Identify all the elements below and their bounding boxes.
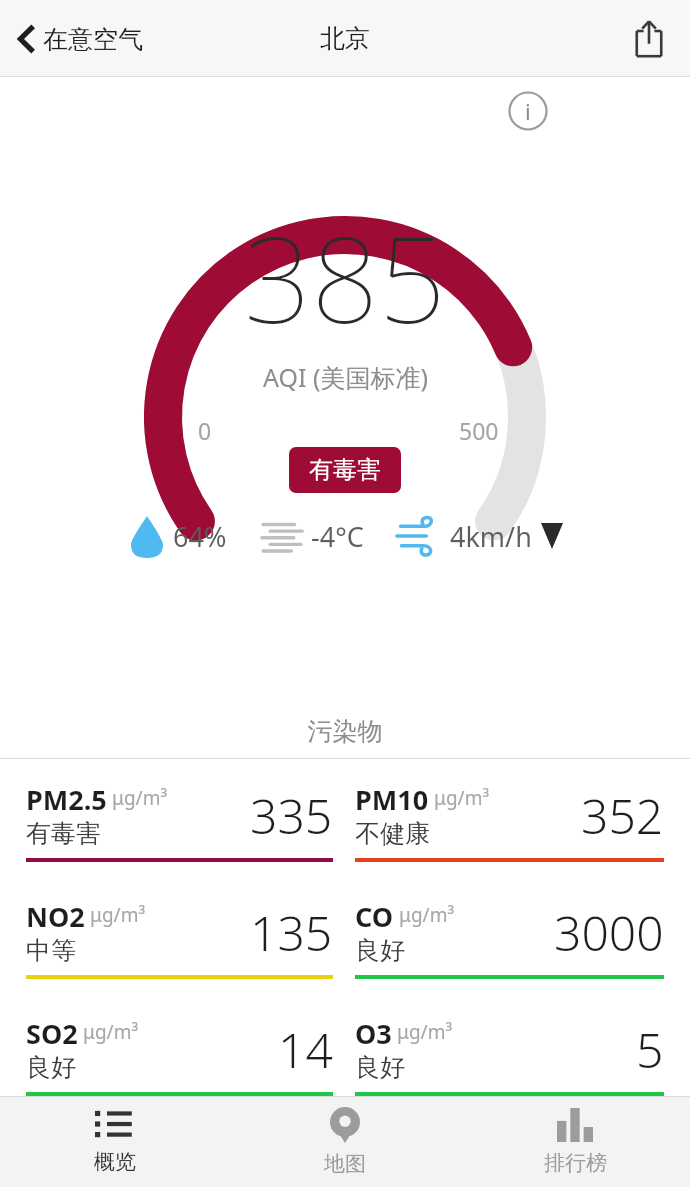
staticText: 5: [636, 1017, 664, 1082]
staticText: PM2.5: [26, 781, 107, 818]
button[interactable]: PM10: [355, 781, 664, 862]
staticText: i: [525, 96, 531, 126]
staticText: 中等: [26, 935, 76, 966]
staticText: 排行榜: [544, 1150, 607, 1176]
staticText: NO2: [26, 898, 85, 935]
staticText: 500: [459, 415, 499, 446]
staticText: 3000: [554, 900, 664, 965]
staticText: 有毒害: [26, 818, 101, 849]
staticText: O3: [355, 1015, 392, 1052]
staticText: AQI (美国标准): [263, 360, 428, 394]
staticText: 14: [278, 1017, 333, 1082]
staticText: 在意空气: [43, 24, 143, 55]
staticText: μg/m³: [397, 1019, 453, 1045]
button[interactable]: Info: [506, 89, 550, 133]
button[interactable]: Share: [622, 12, 676, 66]
staticText: 污染物: [0, 716, 690, 747]
staticText: 64%: [173, 518, 227, 555]
button[interactable]: 概览: [0, 1097, 230, 1187]
staticText: μg/m³: [434, 785, 490, 811]
staticText: μg/m³: [90, 902, 146, 928]
button[interactable]: NO2: [26, 898, 333, 979]
staticText: 良好: [355, 935, 405, 966]
staticText: CO: [355, 898, 394, 935]
staticText: 良好: [26, 1052, 76, 1083]
staticText: PM10: [355, 781, 429, 818]
button[interactable]: O3: [355, 1015, 664, 1096]
staticText: 0: [198, 415, 212, 446]
button[interactable]: SO2: [26, 1015, 333, 1096]
staticText: 4km/h: [450, 518, 532, 555]
button[interactable]: PM2.5: [26, 781, 333, 862]
staticText: 良好: [355, 1052, 405, 1083]
staticText: μg/m³: [399, 902, 455, 928]
staticText: 335: [250, 783, 333, 848]
button[interactable]: 有毒害: [289, 447, 401, 493]
button[interactable]: 在意空气: [10, 16, 149, 62]
staticText: 有毒害: [309, 455, 381, 485]
button[interactable]: 排行榜: [460, 1097, 690, 1187]
staticText: 352: [581, 783, 664, 848]
staticText: SO2: [26, 1015, 78, 1052]
button[interactable]: 地图: [230, 1097, 460, 1187]
staticText: 不健康: [355, 818, 430, 849]
staticText: μg/m³: [83, 1019, 139, 1045]
staticText: 385: [244, 197, 446, 358]
staticText: 北京: [320, 23, 370, 54]
staticText: μg/m³: [112, 785, 168, 811]
staticText: 地图: [324, 1151, 366, 1177]
staticText: 135: [250, 900, 333, 965]
staticText: 概览: [94, 1149, 136, 1175]
button[interactable]: CO: [355, 898, 664, 979]
staticText: -4°C: [311, 518, 364, 555]
